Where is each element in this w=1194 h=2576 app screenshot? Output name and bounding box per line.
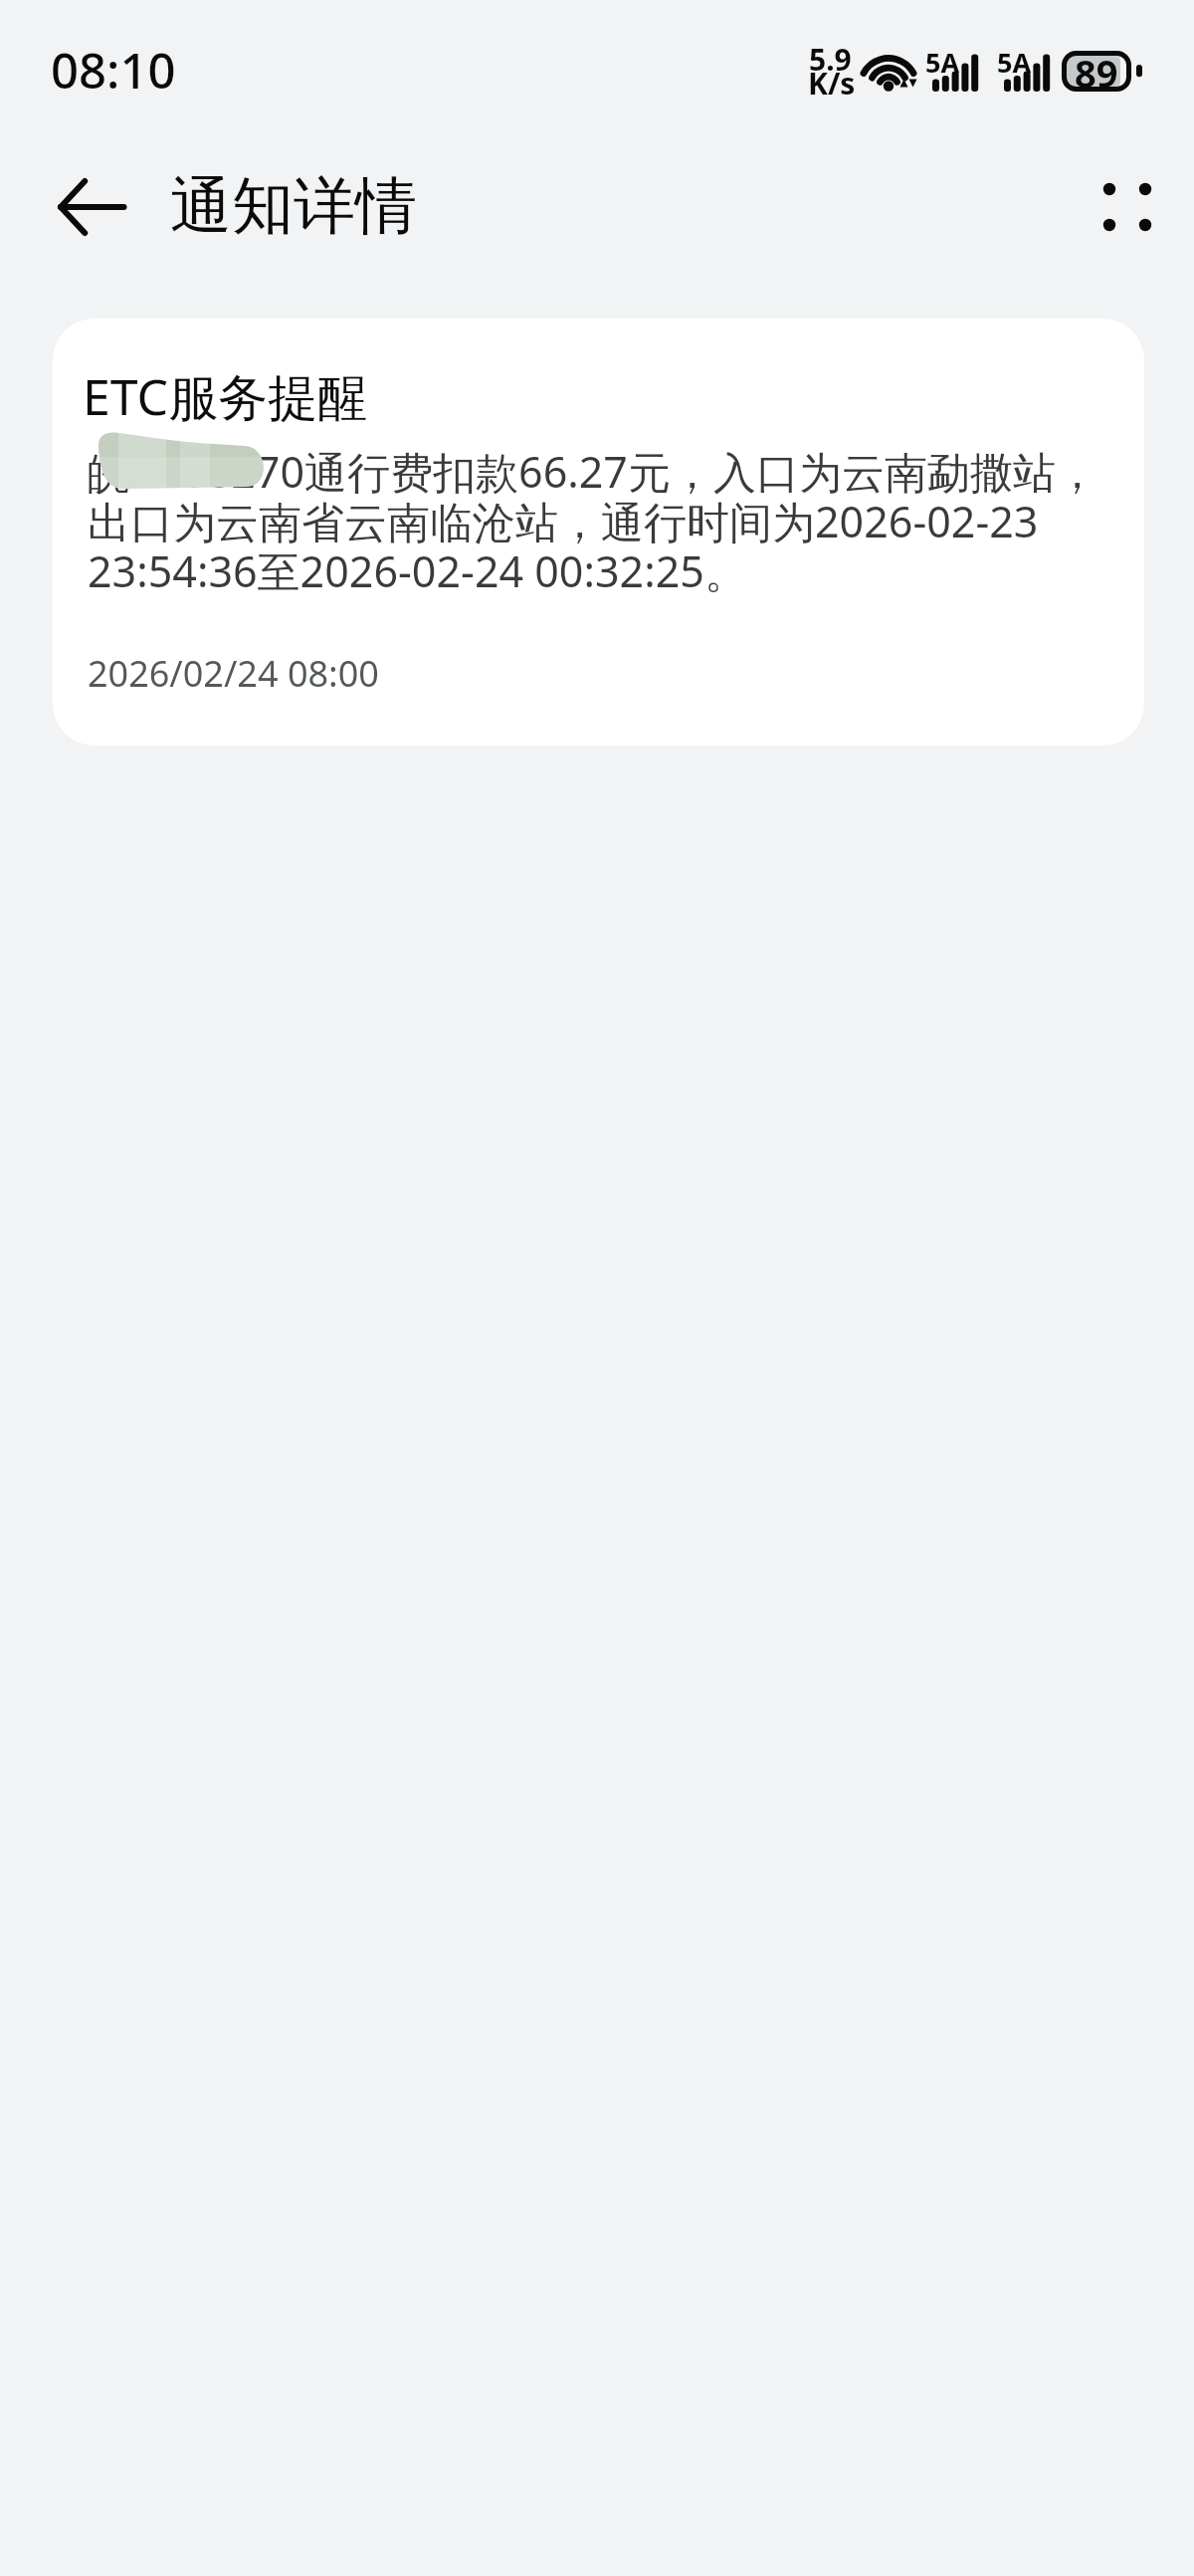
button[interactable]: ETC服务提醒 — [53, 319, 1144, 746]
staticText: 5.9 — [809, 39, 852, 80]
staticText: 皖A158270通行费扣款66.27元，入口为云南勐撒站，出口为云南省云南临沧站… — [88, 442, 1132, 599]
staticText: 08:10 — [51, 37, 176, 104]
staticText: K/s — [808, 63, 856, 104]
button[interactable]: Back — [44, 159, 139, 255]
staticText: ETC服务提醒 — [83, 362, 368, 430]
staticText: 5A — [925, 44, 960, 81]
staticText: 5A — [997, 44, 1032, 81]
staticText: 89 — [1075, 47, 1118, 88]
staticText: 通知详情 — [170, 167, 417, 245]
button[interactable]: More options — [1080, 159, 1175, 255]
staticText: 2026/02/24 08:00 — [88, 649, 379, 698]
